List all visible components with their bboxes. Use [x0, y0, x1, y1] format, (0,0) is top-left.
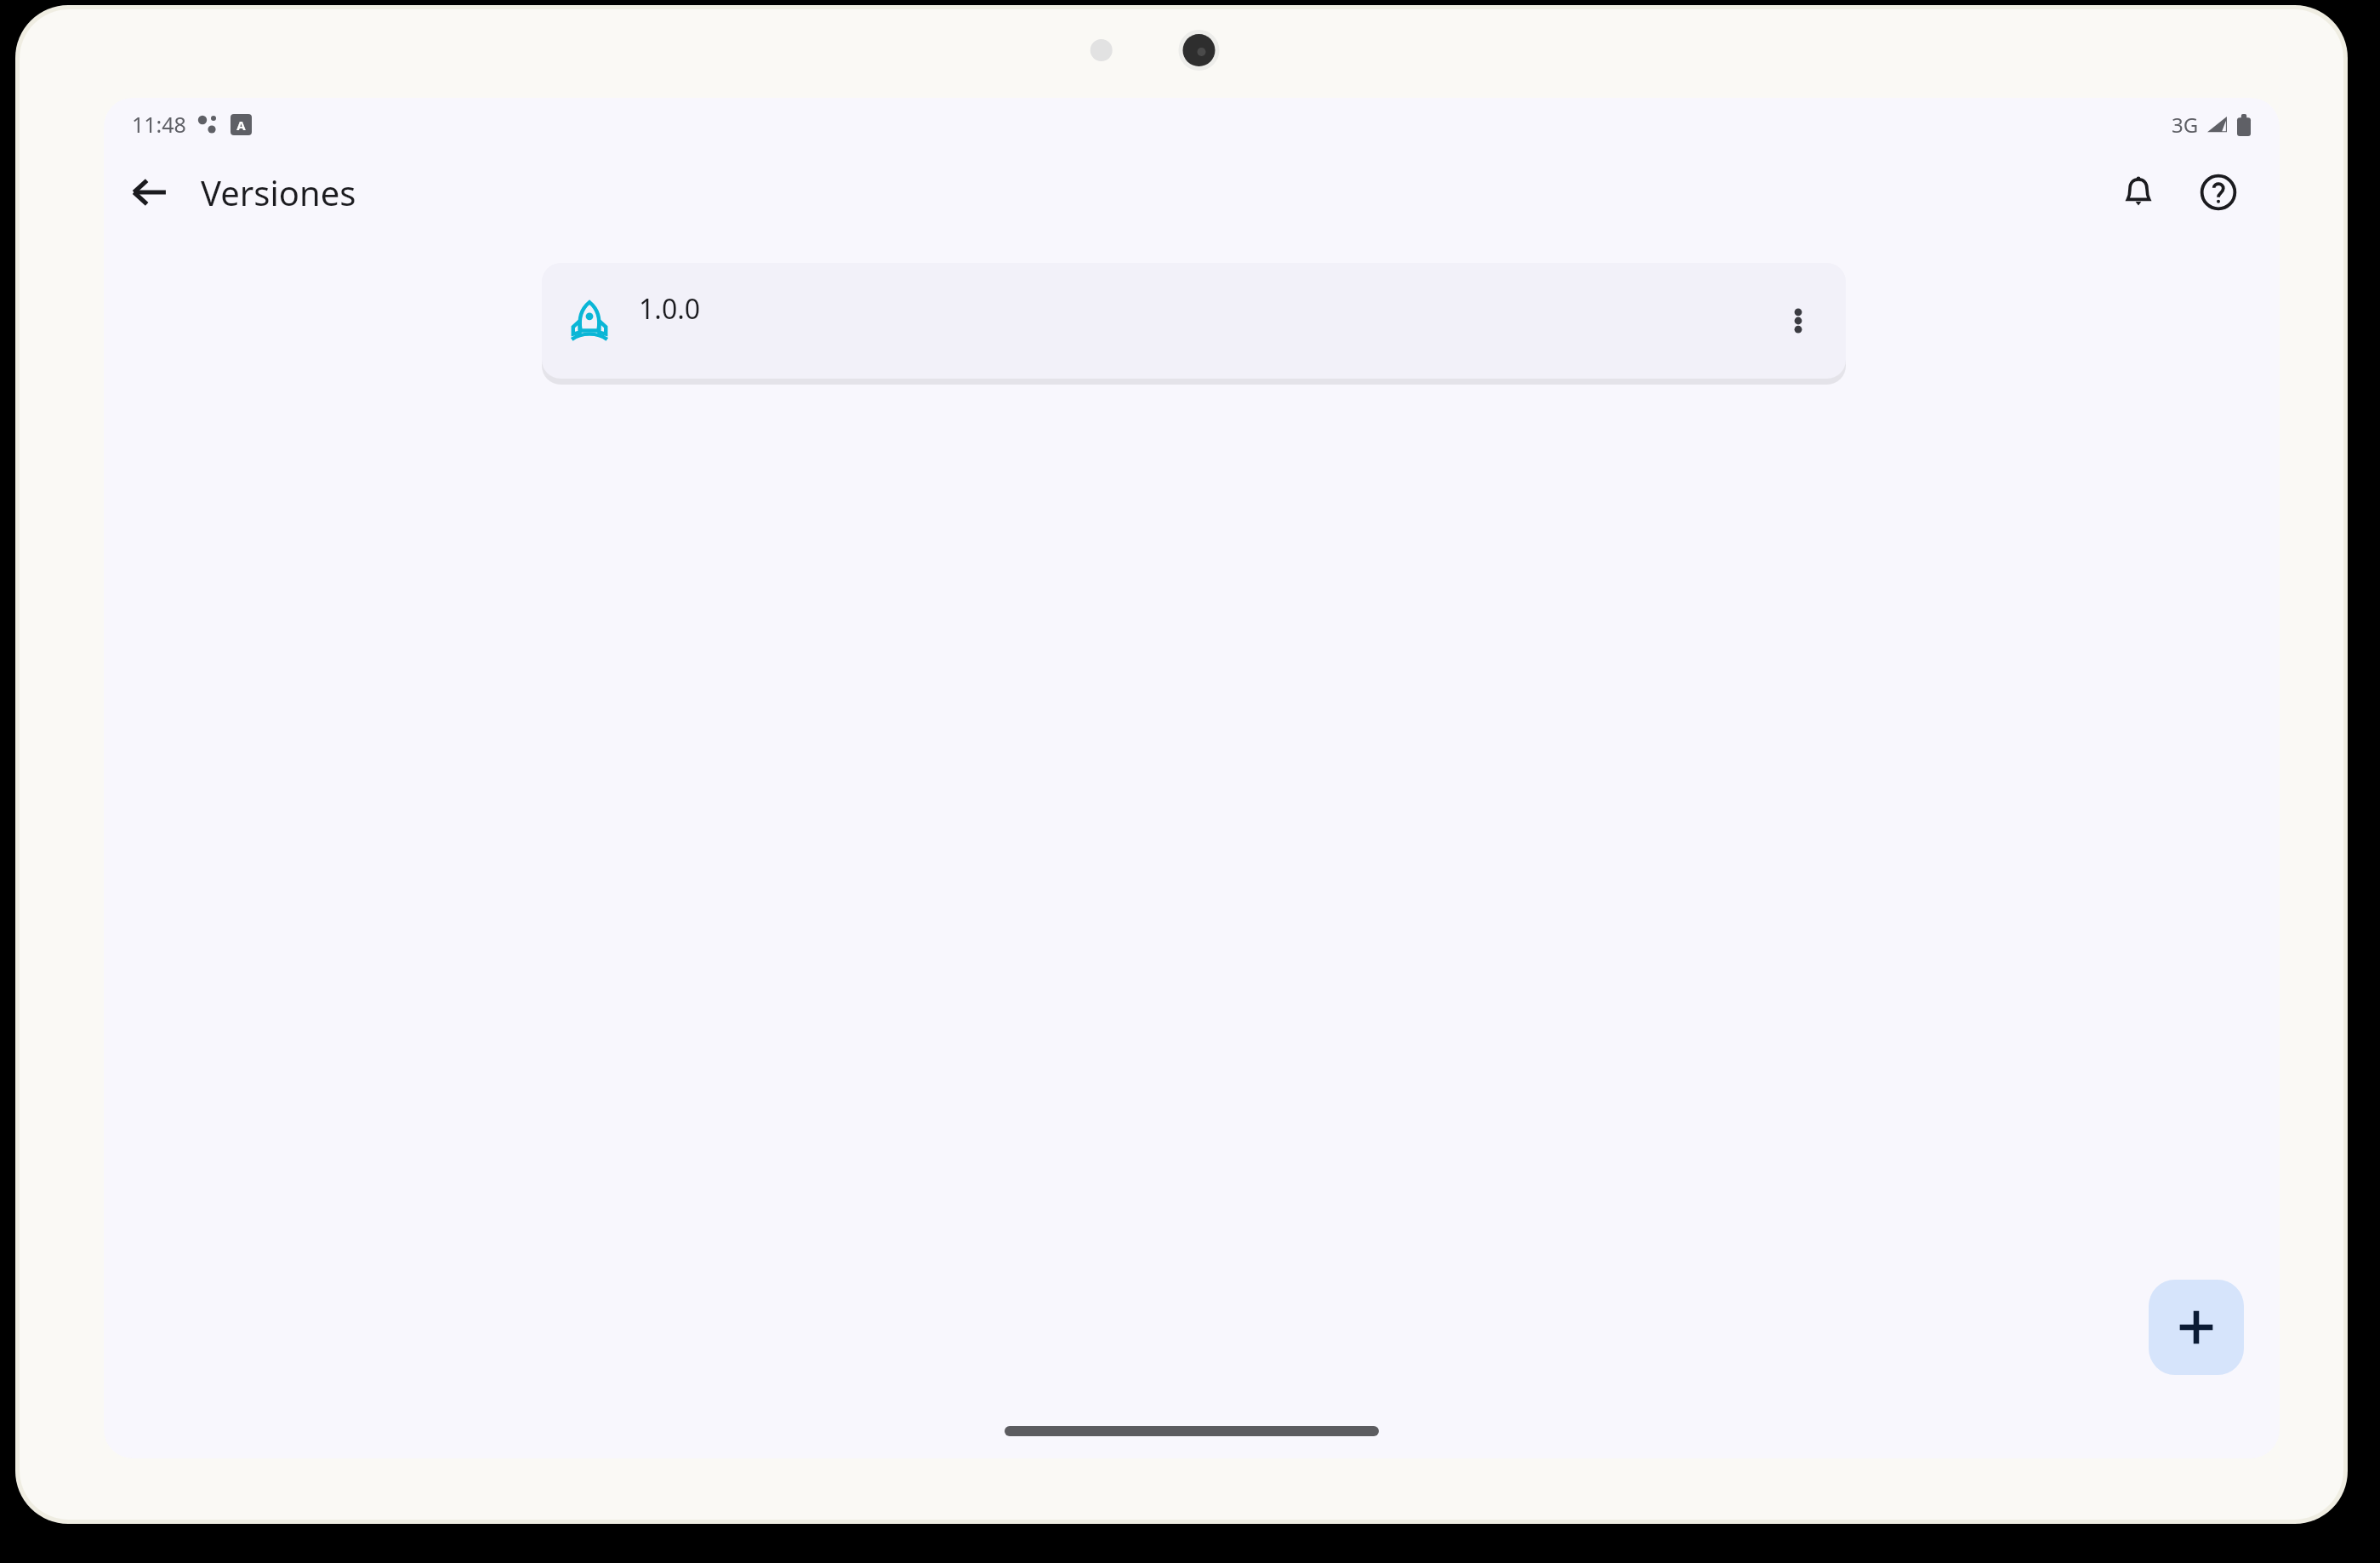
button[interactable]: Notifications — [2101, 155, 2176, 230]
button[interactable]: Add version — [2149, 1280, 2244, 1375]
staticText: 11:48 — [132, 110, 186, 139]
staticText: 1.0.0 — [639, 290, 701, 328]
staticText: Versiones — [201, 169, 356, 215]
staticText: 3G — [2172, 111, 2199, 139]
button[interactable]: Back — [114, 157, 185, 228]
button[interactable]: 1.0.0 — [542, 263, 1846, 379]
staticText: A — [236, 117, 246, 134]
button[interactable]: More options — [1762, 285, 1834, 357]
button[interactable]: Help — [2181, 155, 2256, 230]
